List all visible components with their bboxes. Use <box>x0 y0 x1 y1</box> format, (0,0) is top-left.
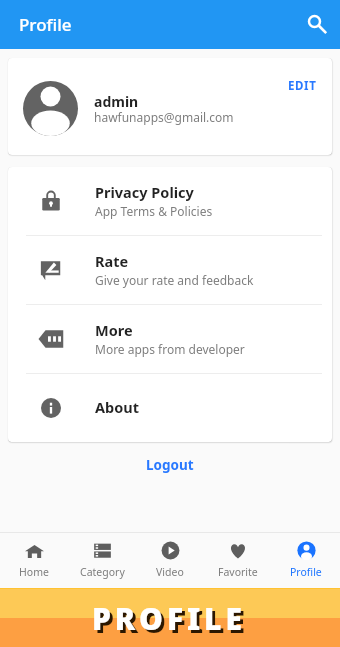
staticText: Home <box>19 565 49 579</box>
button[interactable]: Profile <box>272 533 340 588</box>
staticText: Profile <box>290 565 322 579</box>
button[interactable]: Video <box>136 533 204 588</box>
button[interactable]: EDIT <box>283 75 322 97</box>
staticText: PROFILE <box>92 598 246 639</box>
staticText: Give your rate and feedback <box>95 272 254 288</box>
staticText: admin <box>94 92 139 111</box>
staticText: Profile <box>19 13 72 36</box>
button[interactable]: Home <box>0 533 68 588</box>
button[interactable]: Logout <box>136 453 204 477</box>
button[interactable]: Search <box>299 6 337 44</box>
button[interactable]: More <box>8 305 332 373</box>
staticText: hawfunapps@gmail.com <box>94 109 234 125</box>
staticText: More apps from developer <box>95 341 245 357</box>
button[interactable]: Privacy Policy <box>8 167 332 235</box>
staticText: Privacy Policy <box>95 182 194 202</box>
staticText: Logout <box>146 456 194 474</box>
button[interactable]: About <box>8 374 332 442</box>
button[interactable]: admin <box>8 58 332 155</box>
staticText: App Terms & Policies <box>95 203 213 219</box>
staticText: Favorite <box>218 565 258 579</box>
staticText: Rate <box>95 251 129 271</box>
button[interactable]: Category <box>68 533 136 588</box>
staticText: More <box>95 320 133 340</box>
button[interactable]: Favorite <box>204 533 272 588</box>
staticText: EDIT <box>288 78 317 94</box>
staticText: Video <box>156 565 184 579</box>
button[interactable]: Rate <box>8 236 332 304</box>
staticText: About <box>95 397 139 417</box>
staticText: Category <box>80 565 125 579</box>
staticText: PROFILE <box>95 601 249 642</box>
